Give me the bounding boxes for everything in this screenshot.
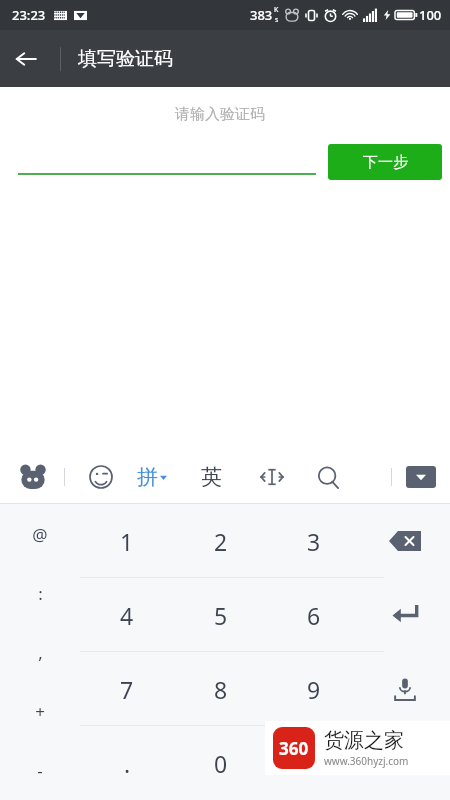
button[interactable]: 1: [80, 504, 174, 578]
button[interactable]: 3: [267, 504, 360, 578]
button[interactable]: Key: [360, 726, 450, 800]
staticText: 23:23: [12, 6, 46, 24]
button[interactable]: Cursor: [252, 457, 292, 497]
button[interactable]: +: [0, 682, 80, 741]
staticText: -: [37, 759, 43, 782]
button[interactable]: 7: [80, 652, 174, 726]
staticText: 5: [214, 600, 228, 631]
button[interactable]: 下一步: [328, 144, 442, 180]
staticText: 请输入验证码: [175, 105, 265, 124]
button[interactable]: Voice input: [360, 652, 450, 726]
button[interactable]: 8: [174, 652, 267, 726]
button[interactable]: .: [80, 726, 174, 800]
button[interactable]: ,: [0, 623, 80, 682]
button[interactable]: 5: [174, 578, 267, 652]
staticText: 0: [214, 748, 228, 779]
staticText: 英: [201, 464, 222, 490]
staticText: www.360hyzj.com: [324, 754, 409, 768]
staticText: K: [274, 5, 279, 15]
button[interactable]: -: [0, 741, 80, 800]
button[interactable]: Hide keyboard: [406, 466, 436, 488]
staticText: :: [38, 582, 43, 605]
button[interactable]: Back: [0, 33, 52, 85]
staticText: 货源之家: [324, 728, 404, 753]
staticText: 2: [214, 526, 228, 557]
staticText: 填写验证码: [78, 47, 173, 71]
button[interactable]: @: [0, 504, 80, 564]
button[interactable]: Search: [308, 457, 348, 497]
staticText: 4: [120, 600, 134, 631]
staticText: 3: [307, 526, 321, 557]
staticText: @: [32, 523, 48, 546]
button[interactable]: 2: [174, 504, 267, 578]
staticText: .: [124, 748, 131, 779]
staticText: +: [35, 700, 45, 723]
button[interactable]: 0: [174, 726, 267, 800]
button[interactable]: :: [0, 564, 80, 623]
staticText: 8: [214, 674, 228, 705]
staticText: 拼: [137, 464, 158, 490]
button[interactable]: 4: [80, 578, 174, 652]
button[interactable]: 拼: [133, 464, 171, 490]
staticText: 1: [120, 526, 134, 557]
staticText: 360: [279, 737, 309, 760]
staticText: s: [275, 15, 279, 25]
button[interactable]: Backspace: [360, 504, 450, 578]
staticText: 9: [307, 674, 321, 705]
button[interactable]: Enter: [360, 578, 450, 652]
staticText: 383: [250, 6, 273, 24]
button[interactable]: Baidu input: [14, 458, 52, 496]
button[interactable]: 6: [267, 578, 360, 652]
button[interactable]: 9: [267, 652, 360, 726]
staticText: ,: [38, 641, 43, 664]
staticText: 100: [419, 6, 442, 24]
button[interactable]: Emoji: [81, 457, 121, 497]
staticText: 7: [120, 674, 134, 705]
staticText: 下一步: [363, 153, 408, 172]
button[interactable]: 英: [195, 464, 228, 490]
staticText: 6: [307, 600, 321, 631]
button[interactable]: [267, 726, 360, 800]
